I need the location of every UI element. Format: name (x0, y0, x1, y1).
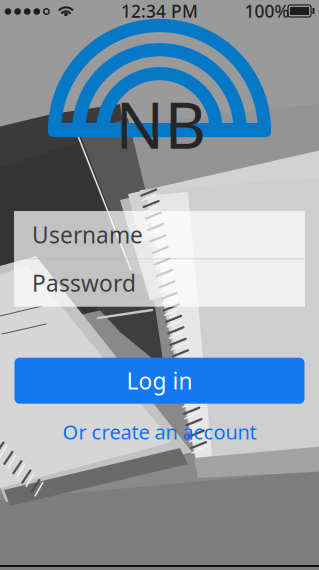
staticText: 12:34 PM (121, 0, 198, 22)
staticText: Password (32, 268, 136, 298)
staticText: Log in (126, 366, 192, 396)
button[interactable]: Username (14, 211, 305, 258)
staticText: NB (115, 81, 206, 166)
button[interactable]: Or create an account (14, 421, 304, 443)
staticText: 100% (244, 0, 289, 22)
staticText: Username (32, 220, 143, 250)
staticText: A à Z (242, 201, 267, 215)
button[interactable]: Log in (14, 358, 304, 404)
staticText: Or create an account (62, 418, 256, 445)
button[interactable]: Password (14, 259, 305, 307)
